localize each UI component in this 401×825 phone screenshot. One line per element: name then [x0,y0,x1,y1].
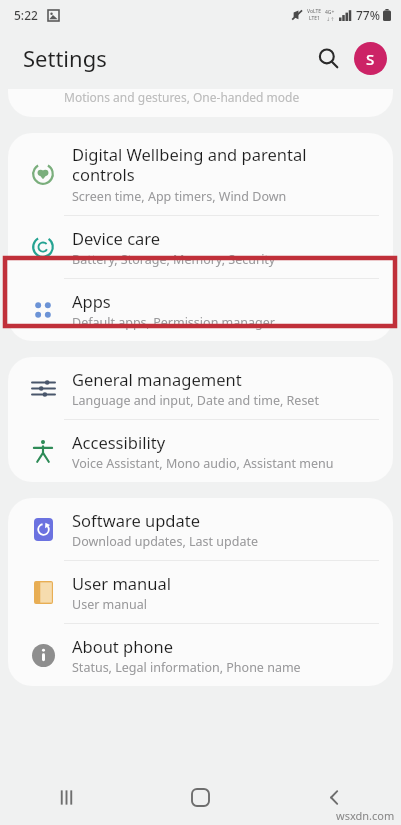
staticText: S [366,49,375,69]
staticText: Apps [72,290,111,312]
staticText: Motions and gestures, One-handed mode [64,89,300,105]
staticText: Software update [72,509,200,531]
button[interactable]: Apps [8,279,393,341]
staticText: Language and input, Date and time, Reset [72,392,319,409]
staticText: ↓↑ [326,16,335,22]
button[interactable]: About phone [8,624,393,686]
staticText: Screen time, App timers, Wind Down [72,188,287,205]
staticText: Settings [23,43,107,73]
button[interactable]: Account [354,42,387,75]
staticText: Status, Legal information, Phone name [72,659,301,676]
staticText: General management [72,368,242,390]
button[interactable]: Back [267,769,401,825]
staticText: Download updates, Last update [72,533,258,550]
button[interactable]: User manual [8,561,393,623]
staticText: VoLTE [307,8,322,15]
button[interactable]: Software update [8,498,393,560]
staticText: Accessibility [72,431,166,453]
staticText: Voice Assistant, Mono audio, Assistant m… [72,455,334,472]
staticText: About phone [72,635,173,657]
staticText: 77% [356,7,380,23]
staticText: Device care [72,227,161,249]
button[interactable]: Recents [0,769,133,825]
button[interactable]: Search [308,38,348,78]
staticText: Digital Wellbeing and parental controls [72,143,307,186]
staticText: User manual [72,572,171,594]
staticText: Default apps, Permission manager [72,314,275,331]
button[interactable]: Accessibility [8,420,393,482]
staticText: User manual [72,596,147,613]
staticText: 4G+ [325,9,335,16]
staticText: 5:22 [14,7,38,23]
staticText: Battery, Storage, Memory, Security [72,251,276,268]
button[interactable]: Digital Wellbeing and parental controls [8,133,393,215]
button[interactable]: General management [8,357,393,419]
button[interactable]: Home [133,769,267,825]
staticText: wsxdn.com [336,808,395,823]
button[interactable]: Motions and gestures, One-handed mode [8,89,393,117]
staticText: LTE1 [309,15,320,22]
button[interactable]: Device care [8,216,393,278]
